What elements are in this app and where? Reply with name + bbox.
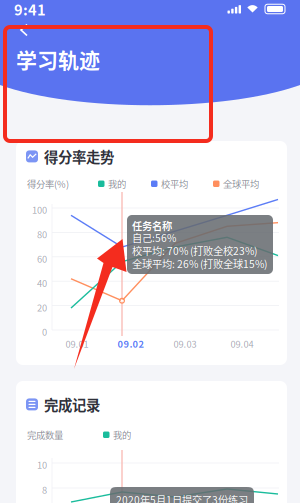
staticText: 8 bbox=[42, 483, 47, 496]
staticText: 全球平均: 26% (打败全球15%) bbox=[132, 256, 267, 271]
staticText: 校平均 bbox=[161, 177, 188, 190]
staticText: 完成数量 bbox=[27, 428, 63, 441]
staticText: 9:41 bbox=[14, 0, 46, 20]
staticText: 09.03 bbox=[173, 337, 196, 350]
staticText: 09.02 bbox=[117, 337, 144, 350]
staticText: 10 bbox=[37, 458, 47, 471]
staticText: 我的 bbox=[108, 177, 126, 190]
staticText: 任务名称 bbox=[132, 218, 172, 233]
staticText: 完成记录 bbox=[44, 394, 100, 415]
staticText: 80 bbox=[37, 227, 47, 241]
staticText: 全球平均 bbox=[223, 177, 259, 190]
staticText: 100 bbox=[32, 203, 47, 216]
staticText: 40 bbox=[37, 276, 47, 290]
staticText: 2020年5月1日提交了3份练习 bbox=[116, 492, 248, 503]
staticText: 学习轨迹 bbox=[16, 44, 100, 74]
staticText: 我的 bbox=[113, 428, 131, 441]
staticText: 09.04 bbox=[230, 337, 253, 350]
staticText: 20 bbox=[37, 301, 47, 314]
staticText: 校平均: 70% (打败全校23%) bbox=[132, 243, 257, 258]
staticText: 60 bbox=[37, 252, 47, 265]
button[interactable]: Back bbox=[10, 18, 34, 42]
staticText: 得分率(%) bbox=[27, 177, 69, 190]
staticText: 09.01 bbox=[65, 337, 88, 350]
staticText: 得分率走势 bbox=[44, 146, 114, 167]
staticText: 自己:56% bbox=[132, 230, 176, 245]
staticText: 0 bbox=[42, 325, 47, 338]
